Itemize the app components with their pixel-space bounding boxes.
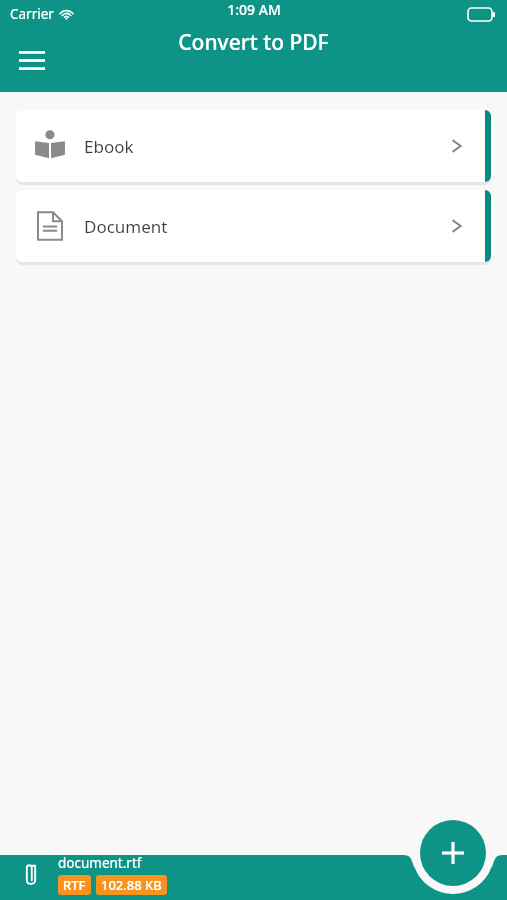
staticText: Ebook <box>84 135 134 158</box>
staticText: RTF <box>63 876 86 894</box>
staticText: Carrier <box>10 5 54 23</box>
button[interactable]: Ebook <box>16 110 491 182</box>
button[interactable]: Document <box>16 190 491 262</box>
staticText: 1:09 AM <box>227 0 281 19</box>
staticText: Convert to PDF <box>178 28 329 57</box>
button[interactable]: Add file <box>420 820 486 886</box>
staticText: document.rtf <box>58 854 142 872</box>
staticText: Document <box>84 215 168 238</box>
button[interactable]: Open navigation menu <box>10 38 54 82</box>
staticText: 102.88 KB <box>101 876 162 894</box>
button[interactable]: Attachment <box>14 857 48 891</box>
